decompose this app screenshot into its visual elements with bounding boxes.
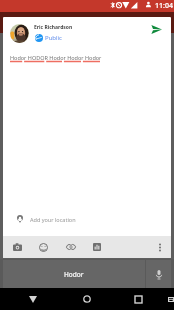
button[interactable]: Recent apps [108,288,168,310]
button[interactable]: More options [149,236,171,258]
button[interactable]: Hodor [3,260,145,288]
button[interactable]: Voice input [146,260,171,288]
button[interactable]: Profile photo [10,24,29,43]
button[interactable]: Create poll [84,236,110,258]
button[interactable]: Hide keyboard [168,288,174,310]
button[interactable]: Add emoji [30,236,57,258]
button[interactable]: Home [66,288,108,310]
staticText: Hodor HODOR Hodor Hodor Hodor [10,54,102,61]
button[interactable]: Add link [57,236,84,258]
staticText: Public [45,34,63,42]
staticText: Eric Richardson [34,24,73,31]
staticText: Add your location [30,216,76,223]
button[interactable]: Back [0,288,66,310]
staticText: Hodor [64,270,84,279]
button[interactable]: Add your location [3,208,171,230]
staticText: 11:04 [155,1,173,11]
button[interactable]: Add photo [4,236,30,258]
button[interactable]: Send post [144,17,168,41]
